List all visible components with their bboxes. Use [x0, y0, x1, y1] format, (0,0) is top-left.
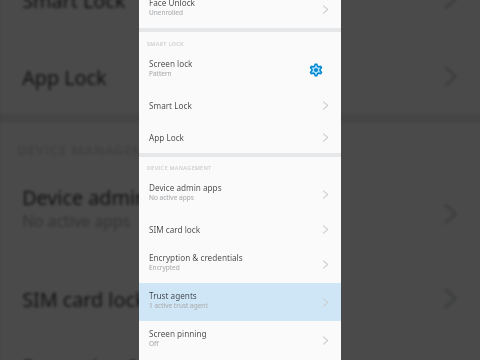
button[interactable]: Device admin apps: [139, 175, 341, 213]
staticText: Smart Lock: [22, 0, 126, 12]
staticText: Screen lock: [149, 58, 193, 69]
staticText: Device admin apps: [149, 182, 222, 193]
staticText: Unenrolled: [149, 8, 183, 17]
staticText: Face Unlock: [149, 0, 195, 8]
button[interactable]: Screen lock: [139, 51, 341, 89]
button[interactable]: App Lock: [139, 121, 341, 153]
staticText: DEVICE MANAGEMENT: [147, 164, 212, 171]
staticText: SIM card lock: [149, 224, 201, 235]
staticText: No active apps: [149, 193, 194, 202]
staticText: 1 active trust agent: [149, 301, 208, 310]
staticText: Encrypted: [149, 263, 180, 272]
staticText: App Lock: [149, 132, 184, 143]
button[interactable]: Face Unlock: [139, 0, 341, 23]
staticText: No active apps: [22, 210, 131, 232]
staticText: Trust agents: [149, 290, 197, 301]
button[interactable]: Encryption & credentials: [139, 245, 341, 283]
button[interactable]: Smart Lock: [139, 89, 341, 121]
staticText: App Lock: [22, 63, 107, 89]
button[interactable]: Trust agents: [139, 283, 341, 321]
staticText: Encryption & credentials: [149, 252, 243, 263]
staticText: Smart Lock: [149, 100, 192, 111]
staticText: SIM card lock: [22, 285, 148, 311]
staticText: Device admin apps: [22, 184, 198, 210]
staticText: Off: [149, 339, 159, 348]
button[interactable]: Screen pinning: [139, 321, 341, 359]
staticText: Encryption & credentials: [22, 353, 249, 360]
staticText: Screen pinning: [149, 328, 207, 339]
staticText: SMART LOCK: [147, 40, 184, 47]
button[interactable]: Screen lock settings: [306, 60, 326, 80]
staticText: Pattern: [149, 69, 172, 78]
staticText: DEVICE MANAGEMENT: [17, 140, 174, 157]
button[interactable]: SIM card lock: [139, 213, 341, 245]
